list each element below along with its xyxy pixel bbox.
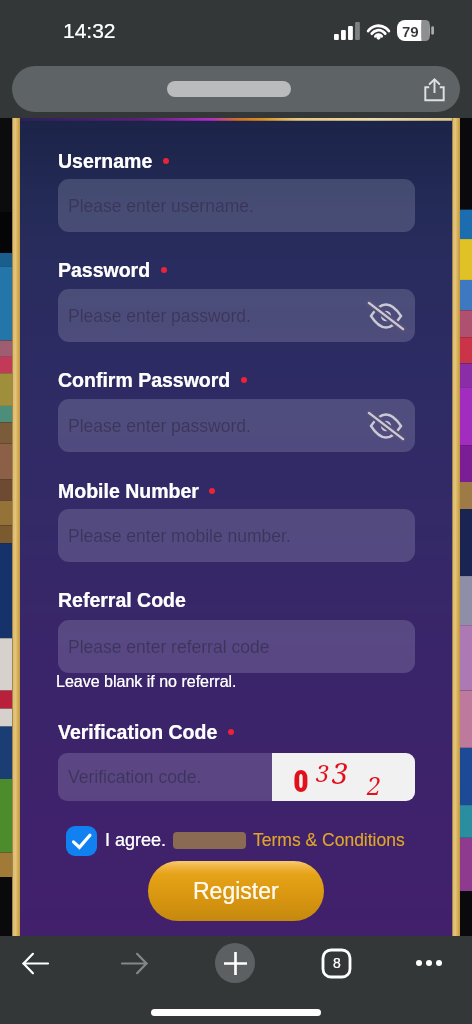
button[interactable]: Please enter password. xyxy=(58,289,415,342)
button[interactable]: Show password xyxy=(366,406,406,446)
staticText: 3 xyxy=(316,756,330,789)
button[interactable]: Please enter mobile number. xyxy=(58,509,415,562)
button[interactable]: Share xyxy=(419,74,449,104)
staticText: 79 xyxy=(402,23,419,40)
staticText: Verification code. xyxy=(68,767,202,787)
button[interactable]: I agree. xyxy=(66,826,406,856)
staticText: Leave blank if no referral. xyxy=(56,673,237,691)
staticText: I agree. xyxy=(105,830,167,850)
staticText: 14:32 xyxy=(63,19,116,42)
staticText: 0 xyxy=(293,763,309,799)
staticText: Register xyxy=(193,878,279,904)
staticText: 8 xyxy=(333,955,341,971)
staticText: Please enter referral code xyxy=(68,637,270,657)
button[interactable]: Tabs xyxy=(303,937,369,989)
staticText: Referral Code xyxy=(58,589,186,611)
button[interactable]: New tab xyxy=(202,937,268,989)
staticText: Please enter mobile number. xyxy=(68,526,291,546)
button[interactable]: Show password xyxy=(366,296,406,336)
staticText: Please enter username. xyxy=(68,196,254,216)
button[interactable]: Back xyxy=(2,937,68,989)
staticText: Confirm Password xyxy=(58,369,231,391)
staticText: 3 xyxy=(332,753,349,792)
button[interactable]: Share xyxy=(12,66,460,112)
staticText: Password xyxy=(58,259,151,281)
staticText: Username xyxy=(58,150,153,172)
staticText: 2 xyxy=(367,768,381,801)
staticText: Please enter password. xyxy=(68,416,251,436)
staticText: Verification Code xyxy=(58,721,218,743)
button[interactable]: Please enter password. xyxy=(58,399,415,452)
button[interactable]: Refresh verification code xyxy=(272,753,415,801)
button[interactable]: Register xyxy=(148,861,324,921)
button[interactable]: Please enter referral code xyxy=(58,620,415,673)
staticText: Mobile Number xyxy=(58,480,199,502)
button[interactable]: Please enter username. xyxy=(58,179,415,232)
staticText: Please enter password. xyxy=(68,306,251,326)
button[interactable]: Terms & Conditions xyxy=(253,830,405,850)
button[interactable]: More options xyxy=(396,937,462,989)
button[interactable]: Forward xyxy=(102,937,168,989)
